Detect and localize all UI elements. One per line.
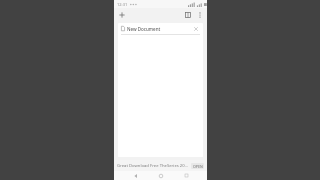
staticText: 12:31: [117, 2, 128, 7]
button[interactable]: Recent apps: [182, 171, 191, 180]
staticText: New Document: [127, 26, 192, 32]
button[interactable]: Great Download Free TheSeries 2019 Mo…: [114, 160, 207, 171]
button[interactable]: View options: [182, 9, 193, 20]
button[interactable]: Add: [116, 9, 127, 20]
staticText: Great Download Free TheSeries 2019 Mo…: [117, 163, 189, 169]
button[interactable]: New Document: [118, 23, 203, 34]
button[interactable]: OPEN: [191, 163, 204, 169]
staticText: OPEN: [193, 164, 203, 169]
button[interactable]: More options: [194, 9, 205, 20]
button[interactable]: Close: [192, 25, 200, 33]
button[interactable]: Home: [156, 171, 165, 180]
button[interactable]: Back: [131, 171, 140, 180]
